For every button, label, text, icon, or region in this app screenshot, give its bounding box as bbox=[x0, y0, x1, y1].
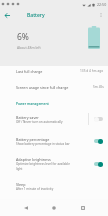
staticText: Last full charge bbox=[16, 69, 43, 74]
button[interactable]: Home bbox=[45, 199, 63, 216]
button[interactable]: Back bbox=[14, 199, 32, 216]
staticText: Adaptive brightness bbox=[16, 157, 51, 162]
button[interactable]: Adaptive brightness bbox=[89, 151, 108, 177]
staticText: Off / Never turn on automatically bbox=[16, 120, 63, 124]
staticText: Optimize brightness level for available bbox=[16, 162, 70, 166]
button[interactable]: Back bbox=[0, 8, 15, 22]
button[interactable]: Battery saver bbox=[0, 108, 108, 130]
staticText: Sleep bbox=[16, 182, 26, 187]
button[interactable]: Last full charge bbox=[0, 63, 108, 79]
staticText: Power management bbox=[16, 101, 49, 106]
staticText: Show battery percentage in status bar bbox=[16, 142, 70, 146]
staticText: 135 d 4 hrs ago bbox=[80, 69, 104, 73]
staticText: Screen usage since full charge bbox=[16, 85, 69, 90]
staticText: 5m 45s bbox=[93, 85, 104, 89]
staticText: 22:50 bbox=[97, 2, 107, 7]
button[interactable]: Battery percentage bbox=[0, 130, 108, 152]
button[interactable]: Recents bbox=[77, 199, 95, 216]
button[interactable]: More options bbox=[94, 8, 108, 22]
staticText: Battery percentage bbox=[16, 137, 50, 142]
staticText: Battery saver bbox=[16, 115, 39, 120]
button[interactable]: Adaptive brightness bbox=[0, 151, 108, 177]
staticText: 6% bbox=[17, 31, 29, 43]
staticText: About 48m left bbox=[17, 45, 41, 50]
button[interactable]: Sleep bbox=[0, 176, 108, 197]
button[interactable]: Screen usage since full charge bbox=[0, 79, 108, 95]
button[interactable]: Battery saver bbox=[89, 108, 108, 130]
button[interactable]: Battery percentage bbox=[89, 130, 108, 152]
staticText: After 1 minute of inactivity bbox=[16, 187, 54, 191]
staticText: Battery bbox=[27, 12, 45, 19]
staticText: light bbox=[16, 167, 23, 171]
